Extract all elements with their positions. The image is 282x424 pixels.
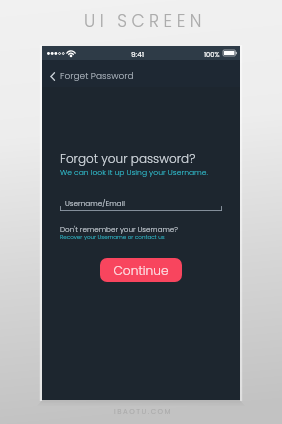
button[interactable]: Continue [100,258,182,282]
staticText: Username/Email [65,198,125,208]
staticText: UI SCREEN [84,9,206,33]
staticText: We can look it up Using your Username. [60,167,208,178]
staticText: IBAOTU.COM [114,407,173,417]
staticText: Don't remember your Username? [60,224,178,234]
staticText: Forgot your password? [60,150,196,167]
staticText: Continue [113,262,169,279]
button[interactable]: Back [48,63,136,85]
staticText: Forget Password [60,70,134,83]
button[interactable]: Recover your Username or contact us [60,233,165,241]
staticText: 9:41 [131,49,145,59]
staticText: 100% [204,50,220,59]
